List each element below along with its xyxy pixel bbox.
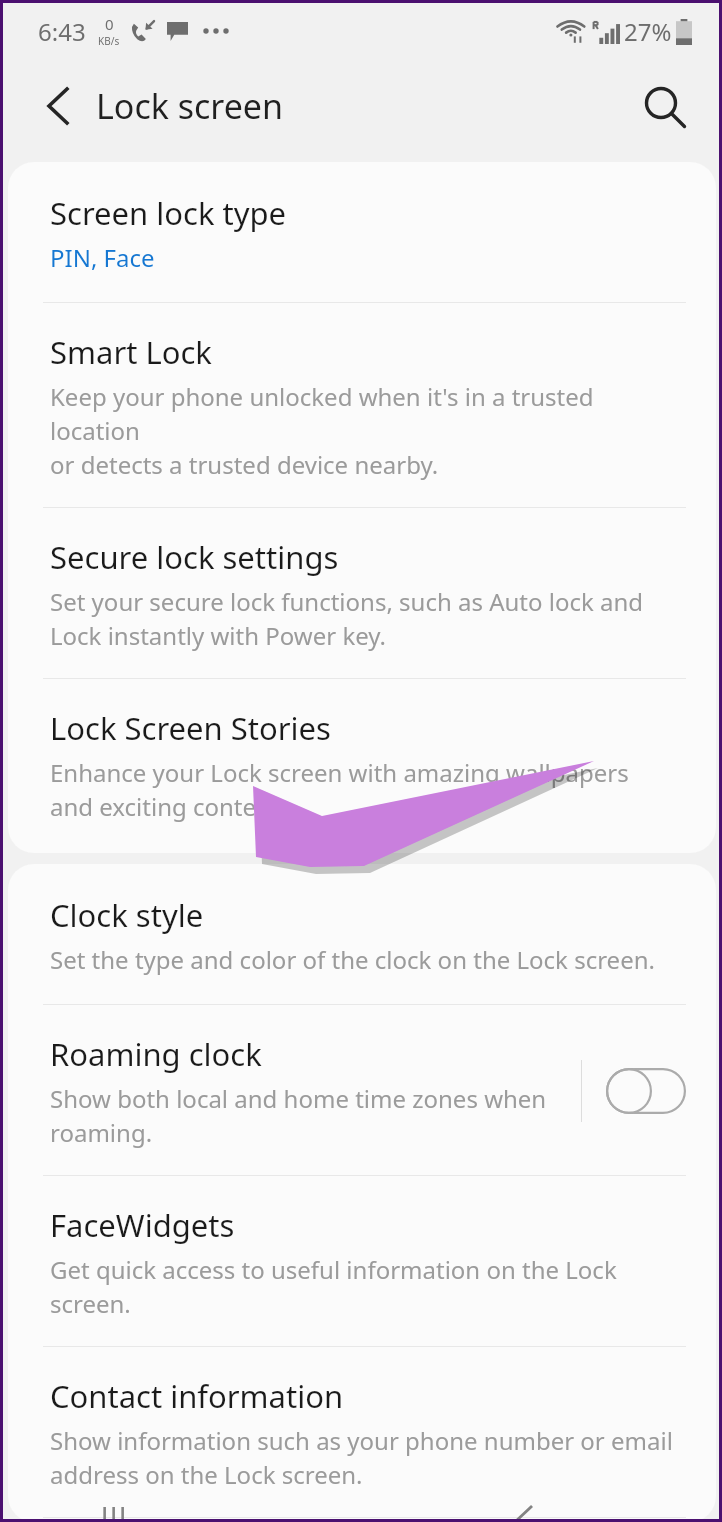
staticText: Show both local and home time zones when… <box>50 1082 547 1149</box>
button[interactable]: Roaming clock <box>8 1005 716 1175</box>
staticText: Contact information <box>50 1375 344 1417</box>
staticText: Screen lock type <box>50 192 287 234</box>
staticText: Keep your phone unlocked when it's in a … <box>50 380 686 481</box>
button[interactable]: Clock style <box>8 864 716 1004</box>
staticText: Clock style <box>50 894 204 936</box>
button[interactable]: Contact information <box>8 1347 716 1517</box>
button[interactable]: Back <box>30 78 86 134</box>
staticText: 0 <box>105 14 114 34</box>
staticText: 6:43 <box>38 15 86 48</box>
button[interactable]: Secure lock settings <box>8 508 716 678</box>
button[interactable]: Search <box>634 76 694 136</box>
button[interactable]: Lock Screen Stories <box>8 679 716 853</box>
staticText: FaceWidgets <box>50 1204 235 1246</box>
button[interactable]: Screen lock type <box>8 162 716 302</box>
staticText: PIN, Face <box>50 241 155 274</box>
staticText: Lock Screen Stories <box>50 707 331 749</box>
staticText: Secure lock settings <box>50 536 339 578</box>
staticText: KB/s <box>98 34 120 48</box>
button[interactable]: Smart Lock <box>8 303 716 507</box>
staticText: Roaming clock <box>50 1033 262 1075</box>
staticText: Lock screen <box>96 83 284 129</box>
staticText: Set the type and color of the clock on t… <box>50 943 655 976</box>
staticText: Get quick access to useful information o… <box>50 1253 617 1320</box>
staticText: Show information such as your phone numb… <box>50 1424 673 1491</box>
button[interactable]: Roaming clock toggle <box>606 1068 686 1114</box>
staticText: 27% <box>624 15 672 48</box>
staticText: Smart Lock <box>50 331 212 373</box>
button[interactable]: FaceWidgets <box>8 1176 716 1346</box>
staticText: Set your secure lock functions, such as … <box>50 585 644 652</box>
staticText: Enhance your Lock screen with amazing wa… <box>50 756 629 823</box>
